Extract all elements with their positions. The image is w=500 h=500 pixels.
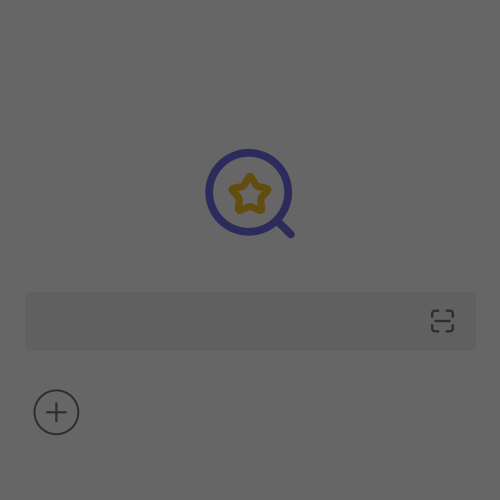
button[interactable]: Add xyxy=(33,389,79,435)
button[interactable] xyxy=(25,292,476,351)
